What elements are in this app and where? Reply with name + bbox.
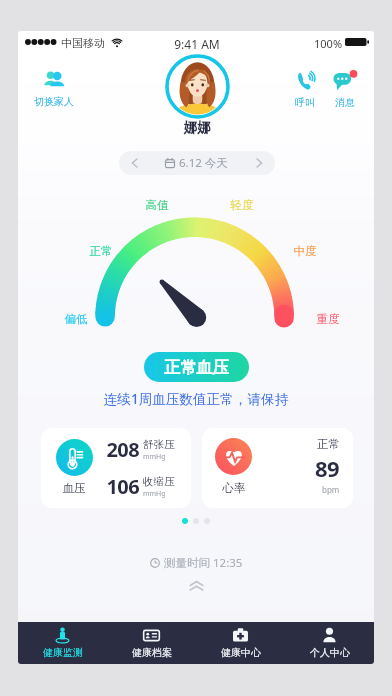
staticText: 健康档案 [132, 646, 172, 659]
staticText: 正常 [71, 244, 131, 258]
staticText: 6.12 今天 [179, 155, 228, 171]
staticText: 9:41 AM [152, 36, 242, 52]
staticText: bpm [322, 484, 340, 495]
staticText: 舒张压 [143, 438, 175, 451]
other: Next day [256, 158, 263, 168]
button[interactable]: 健康中心 [196, 622, 285, 664]
staticText: 测量时间 12:35 [164, 555, 243, 571]
button[interactable]: 血压 [41, 428, 191, 508]
staticText: 89 [315, 453, 340, 483]
staticText: 中度 [275, 244, 335, 258]
button[interactable]: 健康监测 [18, 622, 107, 664]
staticText: 100% [314, 36, 343, 51]
button[interactable]: 呼叫 [283, 70, 327, 109]
button[interactable]: 消息 [323, 70, 367, 109]
staticText: 轻度 [212, 198, 272, 212]
button[interactable]: 心率 [202, 428, 353, 508]
button[interactable]: 正常血压 [144, 352, 249, 382]
staticText: mmHg [143, 489, 166, 499]
staticText: 重度 [298, 312, 358, 326]
button[interactable]: Previous day [119, 151, 275, 175]
staticText: 心率 [204, 481, 264, 495]
button[interactable]: 个人中心 [285, 622, 374, 664]
button[interactable]: Expand [184, 579, 208, 593]
staticText: 中国移动 [61, 36, 105, 50]
staticText: mmHg [143, 452, 166, 462]
staticText: 娜娜 [147, 119, 247, 136]
button[interactable]: 健康档案 [107, 622, 196, 664]
staticText: 消息 [335, 96, 355, 109]
staticText: 连续1周血压数值正常，请保持 [36, 389, 356, 408]
staticText: 个人中心 [310, 646, 350, 659]
staticText: 收缩压 [143, 475, 175, 488]
staticText: 正常血压 [164, 357, 229, 377]
other: Previous day [131, 158, 138, 168]
staticText: 呼叫 [295, 96, 315, 109]
staticText: 偏低 [46, 312, 106, 326]
staticText: 健康中心 [221, 646, 261, 659]
button[interactable] [165, 54, 230, 119]
staticText: 切换家人 [34, 95, 74, 108]
staticText: 208 [84, 436, 139, 463]
staticText: 健康监测 [43, 646, 83, 659]
button[interactable]: 切换家人 [22, 70, 86, 108]
staticText: 高值 [127, 198, 187, 212]
staticText: 正常 [317, 437, 340, 451]
staticText: 血压 [44, 481, 104, 495]
staticText: 106 [84, 473, 139, 500]
